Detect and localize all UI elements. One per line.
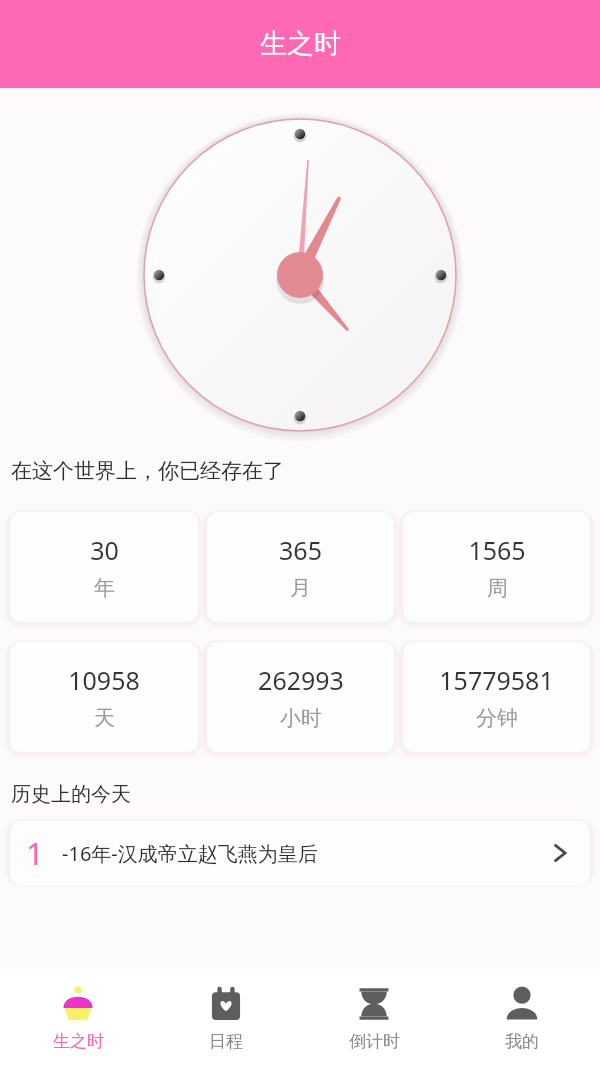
button[interactable]: 倒计时 [304, 968, 444, 1067]
button[interactable]: 30 [10, 512, 198, 622]
staticText: 生之时 [53, 1031, 104, 1052]
button[interactable]: 1565 [403, 512, 590, 622]
staticText: 在这个世界上，你已经存在了 [11, 458, 284, 484]
button[interactable]: 15779581 [403, 642, 590, 752]
staticText: -16年-汉成帝立赵飞燕为皇后 [62, 840, 318, 867]
staticText: 365 [279, 533, 322, 567]
button[interactable]: 日程 [156, 968, 296, 1067]
button[interactable]: 365 [207, 512, 394, 622]
staticText: 30 [90, 533, 119, 567]
staticText: 天 [94, 705, 115, 731]
button[interactable]: 10958 [10, 642, 198, 752]
staticText: 1 [26, 832, 44, 874]
button[interactable]: 我的 [452, 968, 592, 1067]
staticText: 10958 [68, 663, 140, 697]
staticText: 日程 [209, 1031, 243, 1052]
staticText: 15779581 [439, 663, 554, 697]
button[interactable]: 1 [10, 821, 590, 885]
staticText: 年 [94, 575, 115, 601]
button[interactable]: 生之时 [8, 968, 148, 1067]
staticText: 1565 [468, 533, 526, 567]
staticText: 小时 [280, 705, 322, 731]
staticText: 历史上的今天 [11, 782, 131, 807]
staticText: 262993 [258, 663, 344, 697]
staticText: 周 [487, 575, 508, 601]
staticText: 分钟 [476, 705, 518, 731]
staticText: 生之时 [260, 27, 341, 61]
staticText: 我的 [505, 1031, 539, 1052]
staticText: 月 [290, 575, 311, 601]
button[interactable]: 262993 [207, 642, 394, 752]
staticText: 倒计时 [349, 1031, 400, 1052]
